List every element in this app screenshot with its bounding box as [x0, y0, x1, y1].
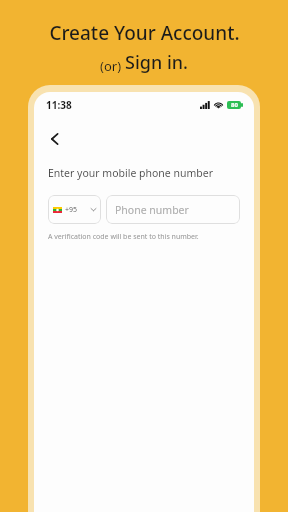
staticText: A verification code will be sent to this…: [48, 232, 199, 242]
button[interactable]: Back: [40, 124, 70, 154]
staticText: 11:38: [46, 98, 72, 112]
staticText: Phone number: [115, 203, 189, 217]
button[interactable]: +95: [48, 195, 101, 224]
button[interactable]: Phone number: [106, 195, 240, 224]
staticText: Enter your mobile phone number: [48, 166, 214, 180]
staticText: Create Your Account.: [49, 20, 240, 46]
staticText: 80: [231, 101, 238, 109]
staticText: (or): [100, 57, 122, 75]
staticText: +95: [65, 205, 78, 215]
staticText: Sign in.: [125, 50, 188, 75]
